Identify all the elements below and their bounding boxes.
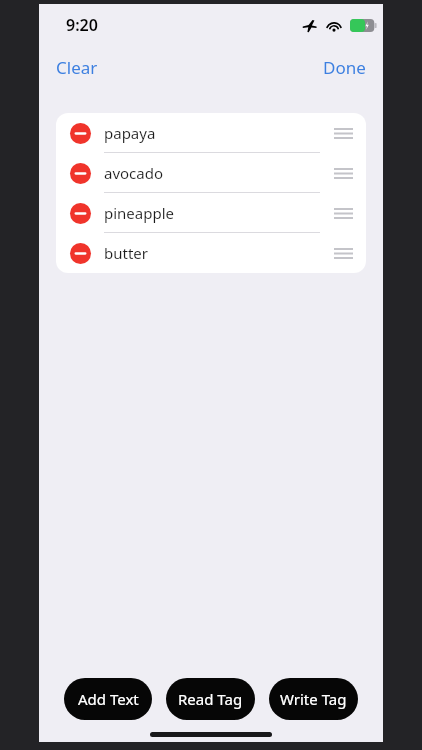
button[interactable]: Read Tag <box>166 678 255 720</box>
staticText: Read Tag <box>178 689 243 709</box>
button[interactable]: Delete avocado <box>56 153 366 193</box>
button[interactable]: Clear <box>39 50 115 85</box>
button[interactable]: Delete butter <box>56 233 366 273</box>
button[interactable]: Delete papaya <box>56 113 366 153</box>
button[interactable]: Write Tag <box>269 678 358 720</box>
button[interactable]: Delete papaya <box>56 113 104 153</box>
button[interactable]: Reorder butter <box>320 233 366 273</box>
staticText: 9:20 <box>66 14 98 36</box>
staticText: avocado <box>104 163 164 183</box>
button[interactable]: Reorder avocado <box>320 153 366 193</box>
button[interactable]: Add Text <box>64 678 152 720</box>
button[interactable]: Reorder pineapple <box>320 193 366 233</box>
staticText: pineapple <box>104 203 175 223</box>
staticText: butter <box>104 243 148 263</box>
button[interactable]: Delete butter <box>56 233 104 273</box>
staticText: Add Text <box>78 689 139 709</box>
button[interactable]: Delete pineapple <box>56 193 104 233</box>
button[interactable]: Delete avocado <box>56 153 104 193</box>
staticText: Write Tag <box>280 689 347 709</box>
staticText: Done <box>323 56 366 79</box>
staticText: papaya <box>104 123 156 143</box>
staticText: Clear <box>56 56 98 79</box>
button[interactable]: Reorder papaya <box>320 113 366 153</box>
button[interactable]: Delete pineapple <box>56 193 366 233</box>
button[interactable]: Done <box>306 50 383 85</box>
